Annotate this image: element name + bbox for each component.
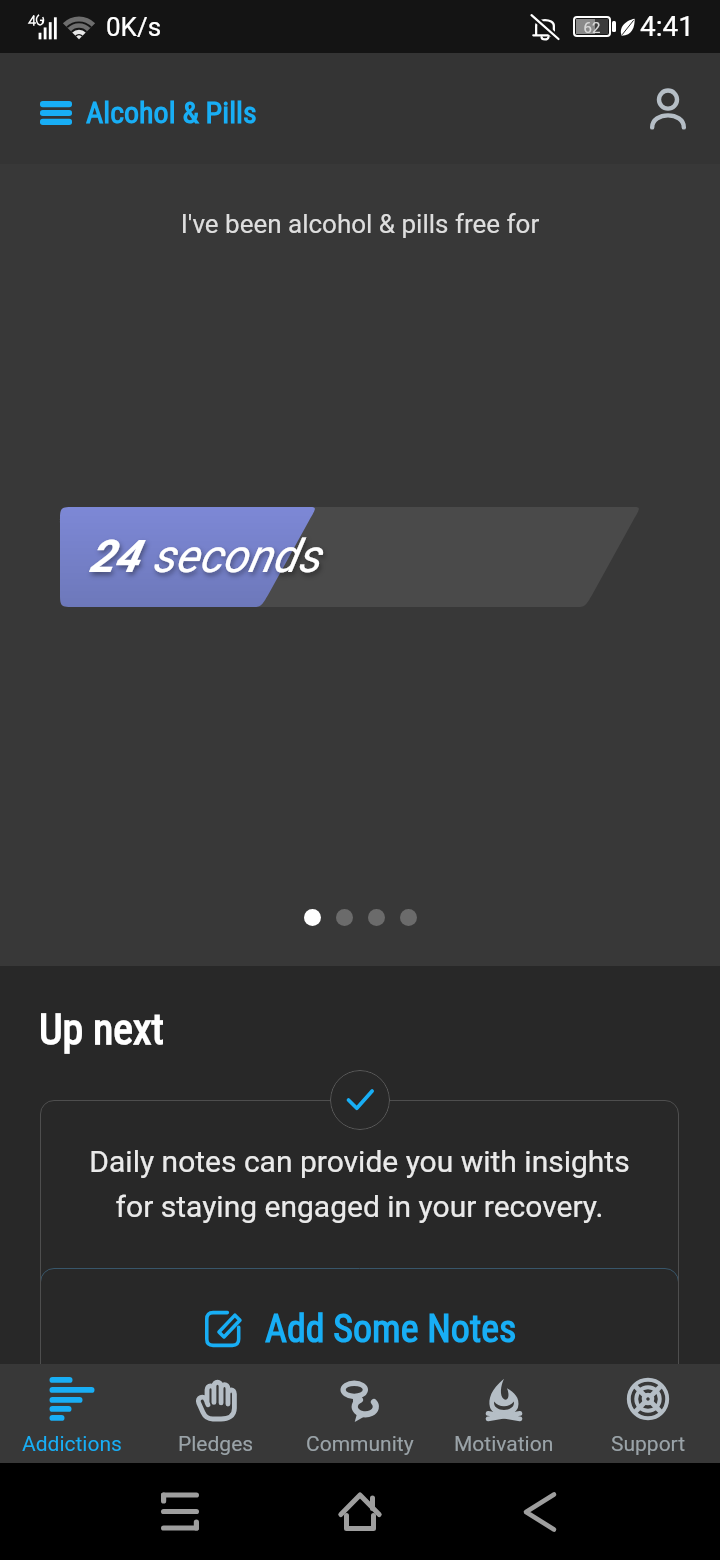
- button[interactable]: Pledges: [144, 1364, 288, 1463]
- staticText: Add Some Notes: [265, 1307, 517, 1352]
- staticText: Motivation: [454, 1432, 554, 1457]
- staticText: Pledges: [178, 1432, 254, 1457]
- staticText: Up next: [39, 1005, 164, 1054]
- button[interactable]: Add Some Notes: [40, 1268, 679, 1390]
- button[interactable]: Support: [576, 1364, 720, 1463]
- button[interactable]: Recent apps: [140, 1472, 220, 1552]
- staticText: 62: [576, 19, 608, 34]
- button[interactable]: Motivation: [432, 1364, 576, 1463]
- staticText: 4:41: [640, 10, 694, 43]
- button[interactable]: Page 4: [400, 909, 417, 926]
- staticText: I've been alcohol & pills free for: [0, 209, 720, 239]
- button[interactable]: Page 3: [368, 909, 385, 926]
- staticText: Addictions: [22, 1432, 122, 1457]
- staticText: seconds: [152, 529, 321, 583]
- staticText: Support: [611, 1432, 686, 1457]
- staticText: 24: [89, 530, 140, 583]
- button[interactable]: Home: [320, 1472, 400, 1552]
- staticText: Community: [306, 1432, 414, 1457]
- staticText: Daily notes can provide you with insight…: [40, 1144, 679, 1224]
- button[interactable]: Addictions: [0, 1364, 144, 1463]
- staticText: Alcohol & Pills: [86, 95, 257, 130]
- staticText: 0K/s: [106, 12, 162, 42]
- button[interactable]: Alcohol & Pills: [0, 73, 273, 144]
- button[interactable]: Page 2: [336, 909, 353, 926]
- button[interactable]: Page 1: [304, 909, 321, 926]
- button[interactable]: Back: [500, 1472, 580, 1552]
- button[interactable]: Community: [288, 1364, 432, 1463]
- button[interactable]: Account: [638, 79, 698, 139]
